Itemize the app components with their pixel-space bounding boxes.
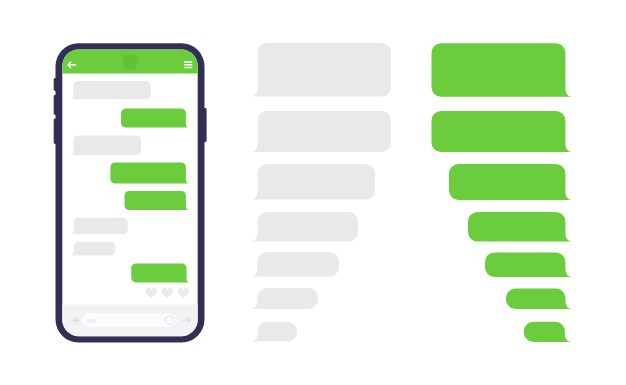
button[interactable]: Received message <box>258 212 359 242</box>
button[interactable]: Sent message <box>485 253 565 278</box>
button[interactable]: Message bubble <box>121 109 186 128</box>
button[interactable]: Received message <box>258 164 376 200</box>
button[interactable]: Message bubble <box>110 162 185 183</box>
button[interactable]: Menu <box>180 55 197 74</box>
button[interactable]: Send <box>179 312 194 328</box>
button[interactable]: Sent message <box>506 289 565 310</box>
button[interactable]: Sent message <box>432 111 566 152</box>
button[interactable]: Received message <box>258 288 319 309</box>
button[interactable]: Message bubble <box>125 191 186 210</box>
staticText: Aa <box>87 316 96 326</box>
button[interactable]: Sent message <box>524 322 565 342</box>
button[interactable]: Sent message <box>468 212 565 242</box>
button[interactable]: Sent message <box>449 164 565 200</box>
button[interactable]: Sent message <box>432 43 566 97</box>
button[interactable]: Reactions <box>144 286 190 300</box>
button[interactable]: Message input <box>82 314 176 327</box>
button[interactable]: Received message <box>258 322 298 342</box>
button[interactable]: Message bubble <box>74 136 142 155</box>
button[interactable]: Message bubble <box>74 242 115 256</box>
button[interactable]: Back <box>64 55 81 74</box>
button[interactable]: Emoji <box>163 313 177 328</box>
button[interactable]: Message bubble <box>131 263 186 282</box>
button[interactable]: Received message <box>258 252 340 277</box>
button[interactable]: Message bubble <box>74 218 128 235</box>
button[interactable]: Received message <box>258 43 392 97</box>
button[interactable]: Add attachment <box>68 312 83 328</box>
